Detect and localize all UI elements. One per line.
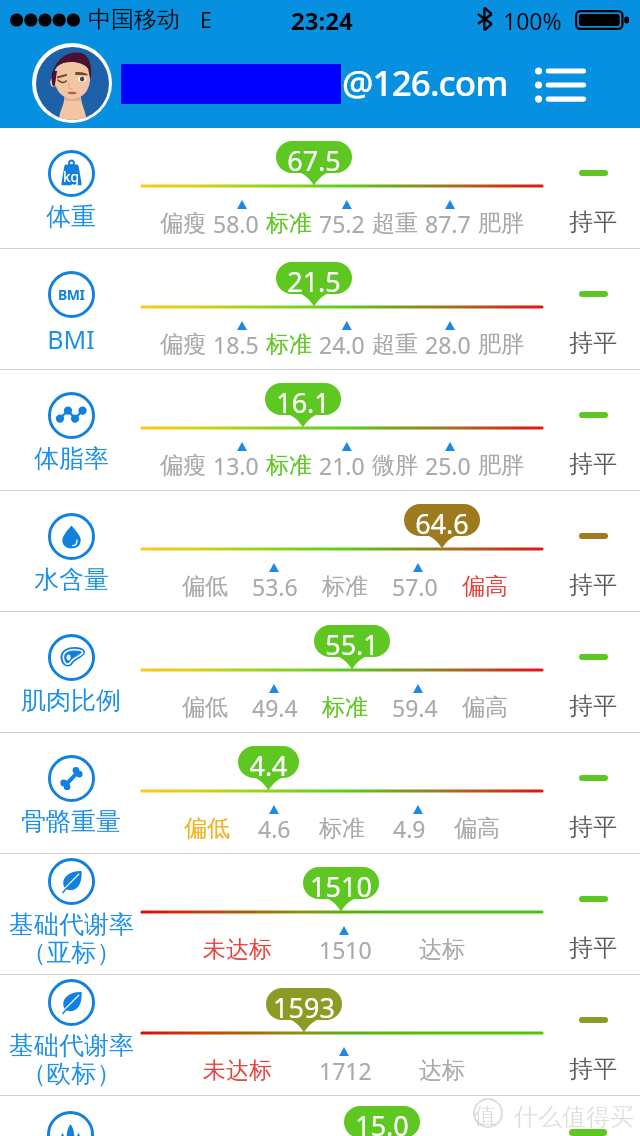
staticText: 53.6 [252,571,298,602]
staticText: 75.2 [319,208,365,239]
staticText: kg [63,167,80,186]
staticText: 23:24 [291,4,353,37]
staticText: 超重 [372,330,418,359]
staticText: 值 [474,1102,496,1130]
staticText: 标准 [322,572,368,601]
staticText: 持平 [569,328,617,358]
button[interactable]: 基础代谢率 （亚标） [0,854,640,974]
staticText: 59.4 [392,692,438,723]
staticText: 什么值得买 [514,1102,634,1132]
staticText: 偏瘦 [160,209,206,238]
staticText: 标准 [266,451,312,480]
staticText: 58.0 [213,208,259,239]
staticText: 持平 [569,570,617,600]
staticText: 标准 [322,693,368,722]
staticText: 1593 [266,989,342,1026]
staticText: 持平 [569,449,617,479]
staticText: 肥胖 [478,451,524,480]
button[interactable]: Menu [531,57,603,111]
staticText: 偏瘦 [160,330,206,359]
staticText: 21.5 [276,263,352,300]
staticText: 偏高 [462,693,508,722]
staticText: 100% [503,5,562,36]
staticText: 基础代谢率 （亚标） [9,909,134,968]
staticText: 1712 [319,1055,372,1086]
staticText: 18.5 [213,329,259,360]
staticText: 49.4 [252,692,298,723]
staticText: 25.0 [425,450,471,481]
staticText: 64.6 [404,505,480,542]
staticText: 4.4 [238,747,299,784]
staticText: 水含量 [34,564,109,595]
button[interactable]: 水含量 [0,491,640,611]
staticText: 偏高 [454,814,500,843]
staticText: 13.0 [213,450,259,481]
staticText: 28.0 [425,329,471,360]
staticText: 偏高 [462,572,508,601]
staticText: 超重 [372,209,418,238]
button[interactable]: Profile avatar [32,43,112,123]
button[interactable]: 肌肉比例 [0,612,640,732]
button[interactable]: kg [0,128,640,248]
staticText: 中国移动 [88,5,180,34]
staticText: 87.7 [425,208,471,239]
staticText: 肌肉比例 [21,685,121,716]
staticText: 持平 [569,207,617,237]
staticText: E [200,6,212,35]
button[interactable]: 基础代谢率 （欧标） [0,975,640,1095]
staticText: 持平 [569,1054,617,1084]
staticText: 4.6 [258,813,291,844]
button[interactable]: BMI [0,249,640,369]
staticText: 偏低 [182,693,228,722]
staticText: 57.0 [392,571,438,602]
staticText: 偏低 [182,572,228,601]
staticText: 4.9 [393,813,426,844]
button[interactable]: 骨骼重量 [0,733,640,853]
staticText: BMI [47,322,95,356]
staticText: 标准 [319,814,365,843]
staticText: 体重 [46,201,96,232]
button[interactable]: 体脂率 [0,370,640,490]
staticText: 16.1 [265,384,341,421]
staticText: 标准 [266,209,312,238]
staticText: 21.0 [319,450,365,481]
staticText: 体脂率 [34,443,109,474]
staticText: 1510 [319,934,372,965]
staticText: 持平 [569,691,617,721]
staticText: BMI [58,285,85,304]
staticText: 达标 [419,935,465,964]
staticText: 偏低 [184,814,230,843]
button[interactable]: 15.0 [0,1096,640,1136]
staticText: 1510 [303,868,379,905]
staticText: 持平 [569,812,617,842]
staticText: 达标 [419,1056,465,1085]
staticText: @126.com [342,59,508,107]
staticText: 微胖 [372,451,418,480]
staticText: 持平 [569,933,617,963]
staticText: 偏瘦 [160,451,206,480]
staticText: 67.5 [276,142,352,179]
staticText: 肥胖 [478,330,524,359]
staticText: 标准 [266,330,312,359]
staticText: 未达标 [203,935,272,964]
staticText: 24.0 [319,329,365,360]
staticText: 基础代谢率 （欧标） [9,1030,134,1089]
staticText: 15.0 [344,1107,420,1136]
staticText: 未达标 [203,1056,272,1085]
staticText: 肥胖 [478,209,524,238]
staticText: 55.1 [314,626,390,663]
staticText: 骨骼重量 [21,806,121,837]
